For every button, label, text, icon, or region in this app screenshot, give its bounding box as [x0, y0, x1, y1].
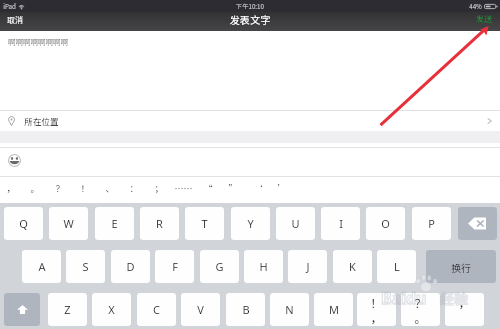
staticText: P — [428, 216, 435, 231]
staticText: 44% — [469, 2, 482, 11]
staticText: H — [259, 259, 268, 274]
button[interactable]: O — [366, 207, 405, 240]
staticText: 经验 — [440, 288, 468, 308]
staticText: L — [394, 259, 400, 274]
staticText: B — [242, 302, 250, 317]
button[interactable]: 发送 — [468, 9, 500, 28]
button[interactable]: T — [185, 207, 224, 240]
button[interactable]: ！ — [357, 293, 396, 326]
button[interactable]: 所在位置 — [0, 111, 500, 131]
button[interactable]: ‘ — [245, 175, 270, 201]
button[interactable]: P — [412, 207, 451, 240]
staticText: ” — [228, 182, 238, 195]
staticText: F — [172, 259, 178, 274]
button[interactable]: Backspace — [458, 207, 497, 240]
button[interactable]: ！ — [72, 175, 97, 201]
staticText: 下午10:10 — [236, 2, 264, 11]
staticText: E — [111, 216, 118, 231]
button[interactable]: J — [288, 250, 327, 283]
staticText: G — [215, 259, 224, 274]
button[interactable]: W — [49, 207, 88, 240]
button[interactable]: ’ — [269, 175, 294, 201]
staticText: A — [38, 259, 46, 274]
staticText: R — [156, 216, 163, 231]
staticText: ！ — [80, 182, 90, 195]
button[interactable]: Q — [4, 207, 43, 240]
staticText: ： — [129, 182, 139, 195]
staticText: 、 — [105, 182, 115, 195]
staticText: I — [339, 216, 343, 231]
staticText: 发表文字 — [230, 12, 270, 26]
staticText: ‘ — [253, 182, 263, 195]
staticText: S — [82, 259, 89, 274]
staticText: 。 — [30, 182, 40, 195]
staticText: W — [63, 216, 74, 231]
staticText: “ — [203, 182, 213, 195]
staticText: 。 — [414, 309, 427, 326]
button[interactable]: 。 — [22, 175, 47, 201]
staticText: C — [153, 302, 160, 317]
button[interactable]: G — [200, 250, 239, 283]
staticText: K — [349, 259, 356, 274]
button[interactable]: M — [314, 293, 353, 326]
staticText: ， — [6, 182, 16, 195]
staticText: D — [126, 259, 135, 274]
button[interactable]: Emoji — [8, 154, 23, 169]
button[interactable]: D — [111, 250, 150, 283]
button[interactable]: X — [92, 293, 131, 326]
button[interactable]: I — [321, 207, 360, 240]
button[interactable]: ， — [445, 293, 484, 326]
staticText: Y — [247, 216, 254, 231]
staticText: 发送 — [476, 13, 492, 25]
staticText: …… — [174, 182, 193, 195]
button[interactable]: H — [244, 250, 283, 283]
staticText: ？ — [55, 182, 65, 195]
staticText: O — [381, 216, 390, 231]
staticText: ’ — [277, 182, 287, 195]
button[interactable]: ？ — [47, 175, 72, 201]
button[interactable]: Shift — [4, 293, 40, 326]
button[interactable]: F — [155, 250, 194, 283]
button[interactable]: Y — [231, 207, 270, 240]
button[interactable]: 、 — [97, 175, 122, 201]
staticText: Z — [64, 302, 71, 317]
staticText: N — [285, 302, 294, 317]
button[interactable]: 取消 — [0, 10, 30, 29]
staticText: iPad — [3, 2, 16, 11]
button[interactable]: E — [95, 207, 134, 240]
staticText: ， — [370, 309, 383, 326]
button[interactable]: U — [276, 207, 315, 240]
button[interactable]: L — [377, 250, 416, 283]
button[interactable]: C — [137, 293, 176, 326]
button[interactable]: ： — [121, 175, 146, 201]
button[interactable]: S — [66, 250, 105, 283]
staticText: ？ — [414, 294, 427, 311]
staticText: Q — [19, 216, 28, 231]
button[interactable]: ， — [0, 175, 23, 201]
staticText: ； — [154, 182, 164, 195]
staticText: T — [201, 216, 208, 231]
button[interactable]: B — [226, 293, 265, 326]
staticText: 所在位置 — [24, 115, 59, 127]
button[interactable]: Z — [48, 293, 87, 326]
staticText: X — [108, 302, 115, 317]
staticText: 啊啊啊啊啊啊啊啊 — [8, 36, 68, 47]
button[interactable]: ？ — [401, 293, 440, 326]
staticText: V — [197, 302, 204, 317]
button[interactable]: V — [181, 293, 220, 326]
button[interactable]: ” — [220, 175, 245, 201]
button[interactable]: A — [22, 250, 61, 283]
staticText: 取消 — [7, 14, 23, 26]
button[interactable]: R — [140, 207, 179, 240]
staticText: U — [291, 216, 300, 231]
button[interactable]: “ — [195, 175, 220, 201]
button[interactable]: ； — [146, 175, 171, 201]
staticText: Baidu baidu.com — [382, 300, 423, 307]
staticText: J — [306, 259, 310, 274]
button[interactable]: N — [270, 293, 309, 326]
button[interactable]: 换行 — [426, 250, 496, 283]
button[interactable]: …… — [171, 175, 196, 201]
staticText: ！ — [370, 294, 383, 311]
staticText: Baidu — [381, 287, 427, 309]
button[interactable]: K — [333, 250, 372, 283]
